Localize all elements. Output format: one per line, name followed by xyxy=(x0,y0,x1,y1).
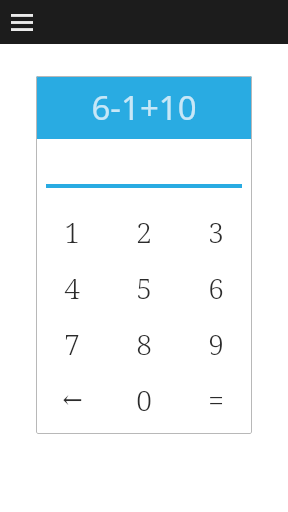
staticText: 4 xyxy=(64,269,80,307)
staticText: 7 xyxy=(64,325,80,363)
staticText: 0 xyxy=(136,381,152,419)
button[interactable]: 2 xyxy=(108,204,180,260)
staticText: 8 xyxy=(136,325,152,363)
staticText: ← xyxy=(62,386,83,414)
staticText: = xyxy=(208,381,224,419)
button[interactable]: 9 xyxy=(180,316,252,372)
button[interactable]: 3 xyxy=(180,204,252,260)
button[interactable]: 7 xyxy=(36,316,108,372)
button[interactable]: 4 xyxy=(36,260,108,316)
button[interactable]: Backspace xyxy=(36,372,108,428)
staticText: 9 xyxy=(208,325,224,363)
staticText: 2 xyxy=(136,213,152,251)
staticText: 3 xyxy=(208,213,224,251)
button[interactable]: 0 xyxy=(108,372,180,428)
button[interactable]: 5 xyxy=(108,260,180,316)
staticText: 1 xyxy=(64,213,80,251)
button[interactable]: Open navigation menu xyxy=(7,7,37,37)
staticText: 6-1+10 xyxy=(91,85,197,130)
button[interactable]: 8 xyxy=(108,316,180,372)
button[interactable]: 1 xyxy=(36,204,108,260)
button[interactable]: = xyxy=(180,372,252,428)
staticText: 6 xyxy=(208,269,224,307)
button[interactable]: 6 xyxy=(180,260,252,316)
staticText: 5 xyxy=(136,269,152,307)
